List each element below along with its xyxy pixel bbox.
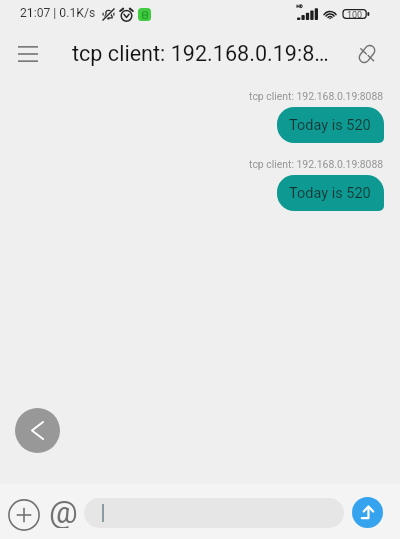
staticText: 100: [347, 10, 363, 21]
staticText: 21:07 | 0.1K/s: [20, 6, 96, 20]
button[interactable]: Menu: [10, 39, 46, 68]
staticText: Today is 520: [289, 185, 371, 202]
staticText: Today is 520: [289, 117, 371, 134]
button[interactable]: Back: [15, 408, 60, 453]
staticText: tcp client: 192.168.0.19:8088: [249, 158, 384, 170]
button[interactable]: Mention: [45, 494, 82, 529]
staticText: tcp client: 192.168.0.19:8…: [72, 41, 329, 66]
button[interactable]: Send: [352, 497, 383, 528]
button[interactable]: Today is 520: [277, 175, 384, 211]
staticText: tcp client: 192.168.0.19:8088: [249, 90, 384, 102]
button[interactable]: Today is 520: [277, 107, 384, 143]
button[interactable]: Add attachment: [5, 496, 43, 534]
button[interactable]: [84, 498, 344, 528]
button[interactable]: Disconnect: [351, 38, 383, 70]
staticText: @: [49, 493, 78, 528]
